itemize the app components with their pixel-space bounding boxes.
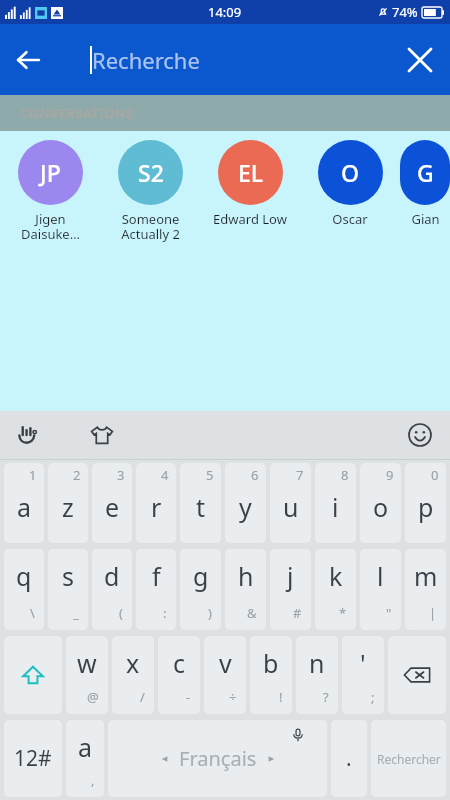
staticText: Recherche <box>92 45 200 75</box>
staticText: 4 <box>161 466 169 484</box>
staticText: k <box>329 559 343 593</box>
button[interactable]: ' <box>342 636 384 714</box>
button[interactable]: 0 <box>405 463 446 543</box>
staticText: JP <box>40 157 61 188</box>
staticText: v <box>219 646 232 680</box>
staticText: \ <box>30 604 35 622</box>
staticText: a <box>78 730 93 764</box>
button[interactable]: m <box>405 549 446 630</box>
button[interactable]: b <box>250 636 292 714</box>
staticText: 6 <box>251 466 259 484</box>
staticText: 0 <box>431 466 439 484</box>
button[interactable]: 9 <box>360 463 401 543</box>
button[interactable]: EL <box>200 140 300 228</box>
button[interactable]: Français <box>108 720 327 797</box>
button[interactable]: 6 <box>225 463 266 543</box>
button[interactable]: 8 <box>315 463 356 543</box>
staticText: m <box>414 559 438 593</box>
staticText: q <box>16 559 32 593</box>
staticText: s <box>62 559 74 593</box>
staticText: l <box>377 559 384 593</box>
button[interactable]: Keyboard settings <box>8 415 48 455</box>
staticText: 3 <box>117 466 125 484</box>
staticText: . <box>346 744 352 773</box>
staticText: ( <box>119 604 123 622</box>
button[interactable]: g <box>180 549 221 630</box>
button[interactable]: S2 <box>100 140 200 243</box>
staticText: Gian <box>411 210 440 228</box>
staticText: Oscar <box>332 210 368 228</box>
staticText: w <box>77 646 97 680</box>
button[interactable]: j <box>270 549 311 630</box>
staticText: @ <box>87 688 99 706</box>
button[interactable]: d <box>92 549 132 630</box>
button[interactable]: w <box>66 636 108 714</box>
button[interactable]: 12# <box>4 720 62 797</box>
button[interactable]: 5 <box>180 463 221 543</box>
button[interactable]: 4 <box>136 463 176 543</box>
button[interactable]: 1 <box>4 463 44 543</box>
button[interactable]: x <box>112 636 154 714</box>
button[interactable]: Shift <box>4 636 62 714</box>
staticText: 9 <box>386 466 394 484</box>
staticText: 2 <box>73 466 81 484</box>
button[interactable]: v <box>204 636 246 714</box>
staticText: j <box>287 559 294 593</box>
staticText: : <box>163 604 167 622</box>
staticText: g <box>193 559 209 593</box>
button[interactable]: Back <box>0 32 56 88</box>
staticText: ? <box>323 688 329 706</box>
staticText: 14:09 <box>208 3 242 21</box>
staticText: Jigen Daisuke… <box>21 210 80 243</box>
staticText: x <box>126 646 140 680</box>
button[interactable]: Themes <box>82 415 122 455</box>
button[interactable]: c <box>158 636 200 714</box>
staticText: ) <box>208 604 212 622</box>
button[interactable]: 3 <box>92 463 132 543</box>
staticText: 8 <box>341 466 349 484</box>
button[interactable]: a <box>66 720 104 797</box>
staticText: o <box>373 490 389 524</box>
button[interactable]: s <box>48 549 88 630</box>
staticText: - <box>186 688 191 706</box>
staticText: EL <box>238 157 264 188</box>
button[interactable]: O <box>300 140 400 228</box>
button[interactable]: Backspace <box>388 636 446 714</box>
staticText: z <box>62 490 74 524</box>
staticText: 12# <box>14 744 52 773</box>
staticText: ÷ <box>229 688 237 706</box>
staticText: 5 <box>206 466 214 484</box>
staticText: ' <box>360 646 366 680</box>
button[interactable]: n <box>296 636 338 714</box>
button[interactable]: k <box>315 549 356 630</box>
staticText: Rechercher <box>377 751 441 767</box>
staticText: a <box>17 490 32 524</box>
button[interactable]: 7 <box>270 463 311 543</box>
button[interactable]: JP <box>0 140 100 243</box>
button[interactable]: Emoji <box>400 415 440 455</box>
button[interactable]: Clear <box>390 30 450 90</box>
staticText: G <box>417 157 434 188</box>
button[interactable]: l <box>360 549 401 630</box>
staticText: # <box>293 604 302 622</box>
staticText: 74% <box>392 3 418 21</box>
button[interactable]: 2 <box>48 463 88 543</box>
button[interactable]: Rechercher <box>371 720 446 797</box>
staticText: * <box>339 604 347 622</box>
staticText: & <box>247 604 257 622</box>
staticText: p <box>418 490 434 524</box>
staticText: Français <box>179 745 257 772</box>
button[interactable]: q <box>4 549 44 630</box>
staticText: _ <box>73 604 79 622</box>
staticText: i <box>332 490 339 524</box>
staticText: | <box>429 604 437 622</box>
staticText: t <box>196 490 206 524</box>
staticText: e <box>105 490 120 524</box>
button[interactable]: h <box>225 549 266 630</box>
button[interactable]: G <box>400 140 450 228</box>
staticText: O <box>341 157 360 188</box>
button[interactable]: f <box>136 549 176 630</box>
staticText: ; <box>371 688 375 706</box>
button[interactable]: . <box>331 720 367 797</box>
staticText: b <box>263 646 279 680</box>
